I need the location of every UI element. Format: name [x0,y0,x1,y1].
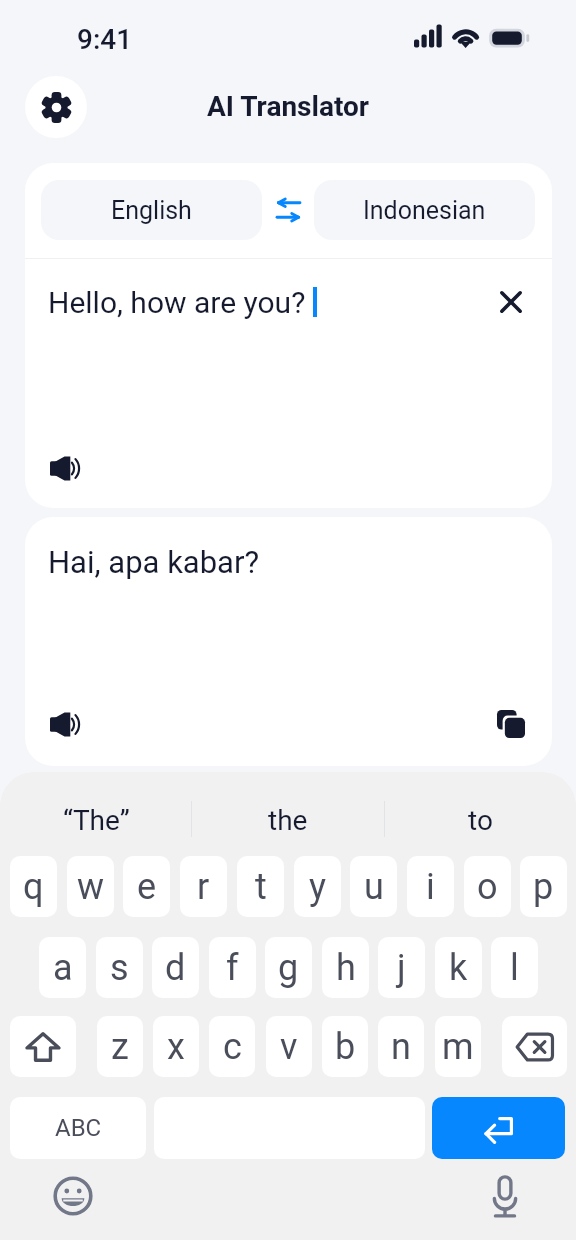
staticText: the [268,804,308,837]
staticText: d [165,947,186,989]
staticText: a [53,947,73,989]
button[interactable]: l [491,937,538,998]
button[interactable]: z [97,1016,143,1077]
button[interactable]: k [435,937,482,998]
staticText: p [533,866,554,908]
staticText: ABC [55,1114,102,1142]
staticText: j [397,947,406,989]
button[interactable]: d [152,937,199,998]
button[interactable]: the [192,780,384,860]
button[interactable]: Backspace [502,1016,567,1077]
button[interactable]: h [322,937,369,998]
button[interactable]: a [39,937,86,998]
button[interactable]: p [520,856,567,917]
button[interactable]: o [464,856,511,917]
staticText: f [226,947,239,989]
staticText: Hello, how are you? [48,285,306,320]
button[interactable]: b [322,1016,368,1077]
button[interactable]: Enter [432,1097,565,1159]
button[interactable]: Shift [10,1016,76,1077]
button[interactable]: u [350,856,397,917]
staticText: s [110,947,129,989]
button[interactable]: w [67,856,114,917]
staticText: q [23,866,44,908]
staticText: v [280,1026,298,1068]
button[interactable]: g [265,937,312,998]
button[interactable]: e [123,856,170,917]
button[interactable]: s [96,937,143,998]
button[interactable]: j [378,937,425,998]
button[interactable]: i [407,856,454,917]
staticText: z [111,1026,129,1068]
button[interactable]: f [209,937,256,998]
staticText: AI Translator [0,90,576,123]
button[interactable]: “The” [0,780,192,860]
staticText: e [137,866,157,908]
button[interactable]: Emoji [48,1171,98,1221]
staticText: to [468,804,493,837]
button[interactable]: y [294,856,341,917]
staticText: x [167,1026,185,1068]
staticText: g [278,947,299,989]
staticText: English [111,196,192,225]
button[interactable]: Indonesian [314,180,535,240]
button[interactable]: Play source audio [39,443,89,493]
staticText: Indonesian [363,196,486,225]
button[interactable]: to [384,780,576,860]
staticText: l [510,947,519,989]
button[interactable]: q [10,856,57,917]
button[interactable]: Swap languages [266,188,310,232]
staticText: i [426,866,435,908]
staticText: 9:41 [77,23,133,56]
staticText: t [255,866,267,908]
button[interactable]: n [378,1016,424,1077]
staticText: Hai, apa kabar? [48,544,260,580]
button[interactable]: m [435,1016,481,1077]
staticText: n [391,1026,411,1068]
button[interactable]: ABC [10,1097,146,1159]
staticText: o [477,866,498,908]
staticText: b [335,1026,356,1068]
button[interactable]: Copy translation [486,699,536,749]
staticText: “The” [63,804,130,837]
button[interactable]: Voice input [480,1172,530,1222]
staticText: k [449,947,468,989]
staticText: r [197,866,210,908]
button[interactable]: c [209,1016,255,1077]
button[interactable]: Settings [25,76,87,138]
staticText: c [223,1026,242,1068]
staticText: y [309,866,327,908]
staticText: h [336,947,356,989]
button[interactable]: x [153,1016,199,1077]
button[interactable]: v [266,1016,312,1077]
staticText: w [77,866,105,908]
button[interactable]: English [41,180,262,240]
button[interactable]: Play translation audio [39,699,89,749]
staticText: u [364,866,384,908]
button[interactable]: Clear text [486,277,536,327]
button[interactable]: r [180,856,227,917]
button[interactable]: t [237,856,284,917]
staticText: m [442,1026,474,1068]
